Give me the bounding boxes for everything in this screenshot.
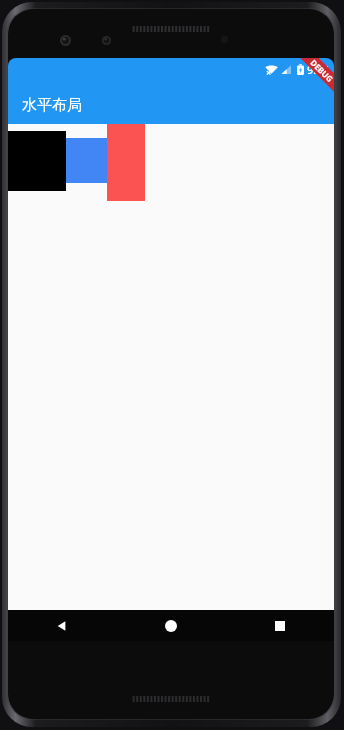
staticText: DEBUG bbox=[308, 58, 334, 84]
button[interactable]: Recent apps bbox=[225, 610, 334, 641]
button[interactable]: Back bbox=[8, 610, 116, 641]
button[interactable]: Home bbox=[116, 610, 225, 641]
staticText: 9:26 bbox=[307, 62, 329, 77]
staticText: 水平布局 bbox=[22, 96, 82, 115]
